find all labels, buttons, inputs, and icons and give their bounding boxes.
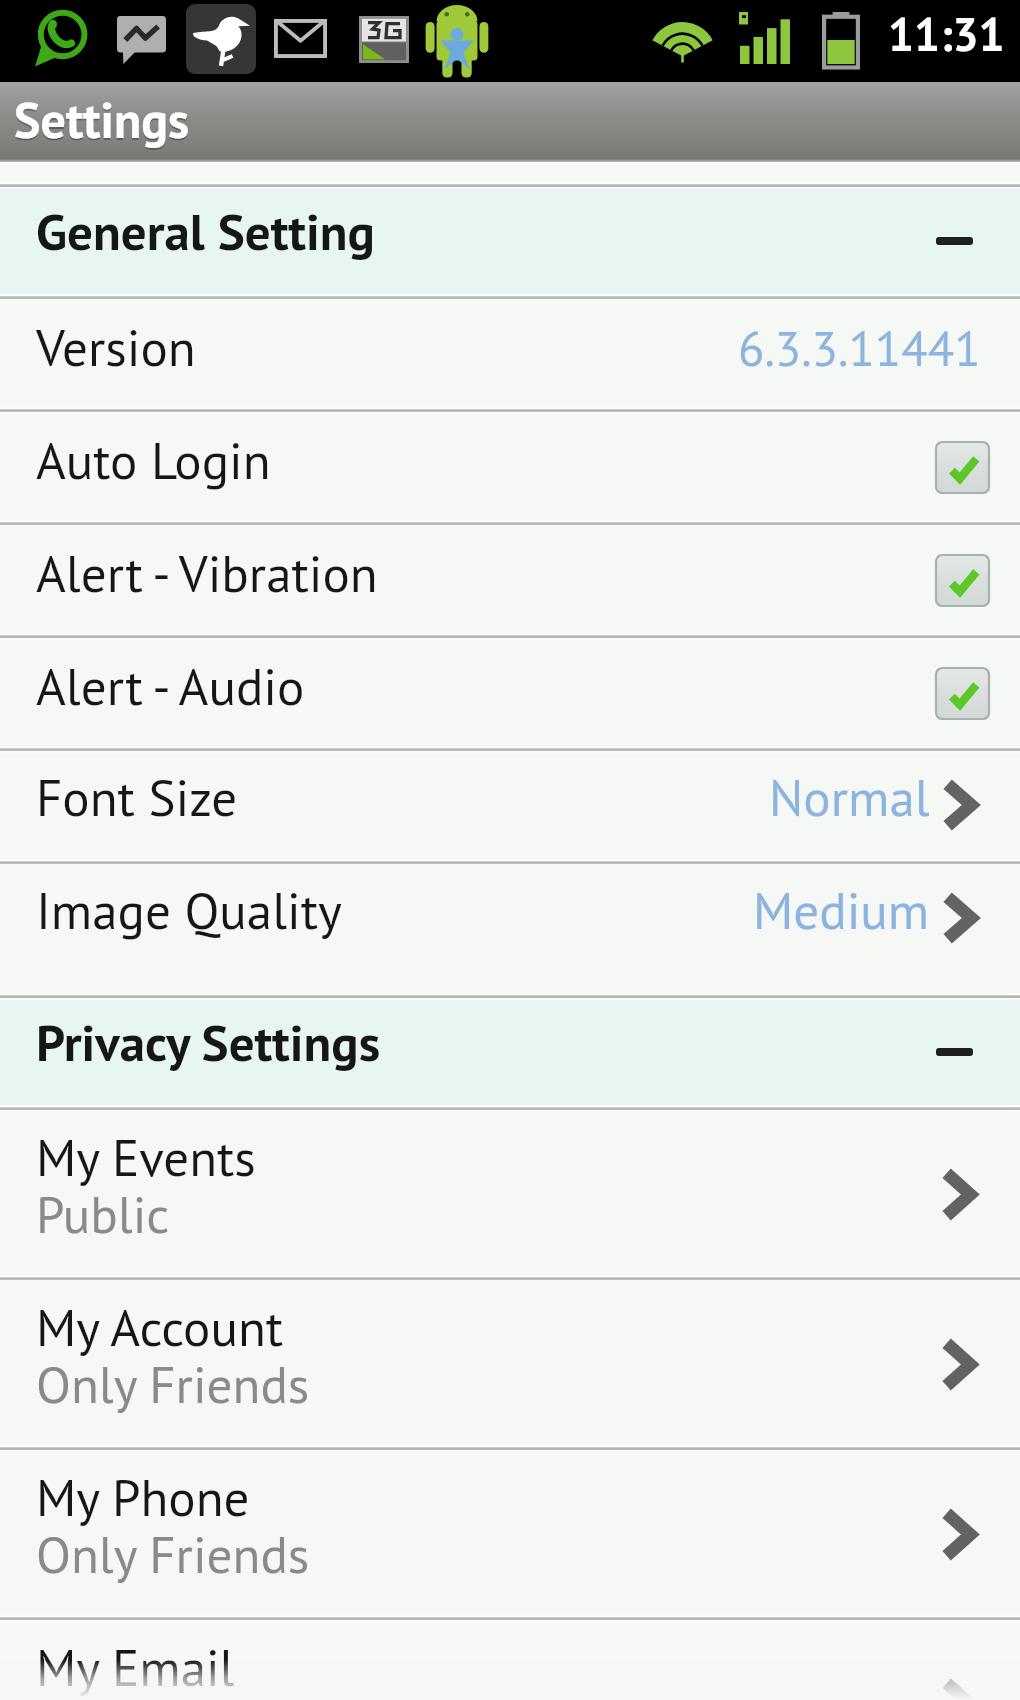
other: Wi-Fi: [649, 14, 716, 62]
staticText: Image Quality: [36, 877, 342, 943]
button[interactable]: My Email: [0, 1622, 1020, 1700]
staticText: Normal: [769, 764, 930, 830]
staticText: Privacy Settings: [36, 1009, 381, 1075]
button[interactable]: Alert - Vibration: [0, 527, 1020, 633]
other: 3G data: [359, 16, 409, 63]
staticText: Auto Login: [36, 427, 271, 493]
staticText: 11:31: [888, 4, 1005, 64]
staticText: Only Friends: [36, 1521, 310, 1587]
other: Twitter: [186, 4, 256, 74]
staticText: 6.3.3.11441: [738, 317, 981, 380]
other: Collapse section: [936, 237, 973, 245]
staticText: Settings: [14, 89, 190, 154]
staticText: General Setting: [36, 198, 375, 264]
button[interactable]: My Events: [0, 1112, 1020, 1275]
other: Collapse section: [936, 1048, 973, 1056]
other: Mobile signal: [735, 12, 785, 64]
staticText: Font Size: [36, 764, 238, 830]
button[interactable]: Alert - Audio: [0, 640, 1020, 746]
other: Android: [425, 2, 489, 79]
button[interactable]: General Setting: [0, 189, 1020, 294]
other: Messages: [117, 16, 166, 64]
other: Gmail: [274, 19, 327, 58]
staticText: Alert - Vibration: [36, 540, 378, 606]
staticText: My Email: [36, 1634, 235, 1700]
staticText: Version: [36, 314, 196, 380]
staticText: Settings: [14, 87, 190, 152]
staticText: My Events: [36, 1124, 256, 1190]
button[interactable]: My Phone: [0, 1452, 1020, 1615]
button[interactable]: Image Quality: [0, 866, 1020, 993]
staticText: My Phone: [36, 1464, 250, 1530]
button[interactable]: Version: [0, 301, 1020, 407]
button[interactable]: Privacy Settings: [0, 1000, 1020, 1105]
other: Battery: [822, 12, 860, 68]
staticText: Only Friends: [36, 1351, 310, 1417]
button[interactable]: Font Size: [0, 753, 1020, 859]
staticText: My Account: [36, 1294, 284, 1360]
staticText: Medium: [753, 877, 930, 943]
other: WhatsApp: [34, 11, 86, 67]
button[interactable]: My Account: [0, 1282, 1020, 1445]
staticText: Public: [36, 1181, 170, 1247]
staticText: Alert - Audio: [36, 653, 305, 719]
button[interactable]: Auto Login: [0, 414, 1020, 520]
